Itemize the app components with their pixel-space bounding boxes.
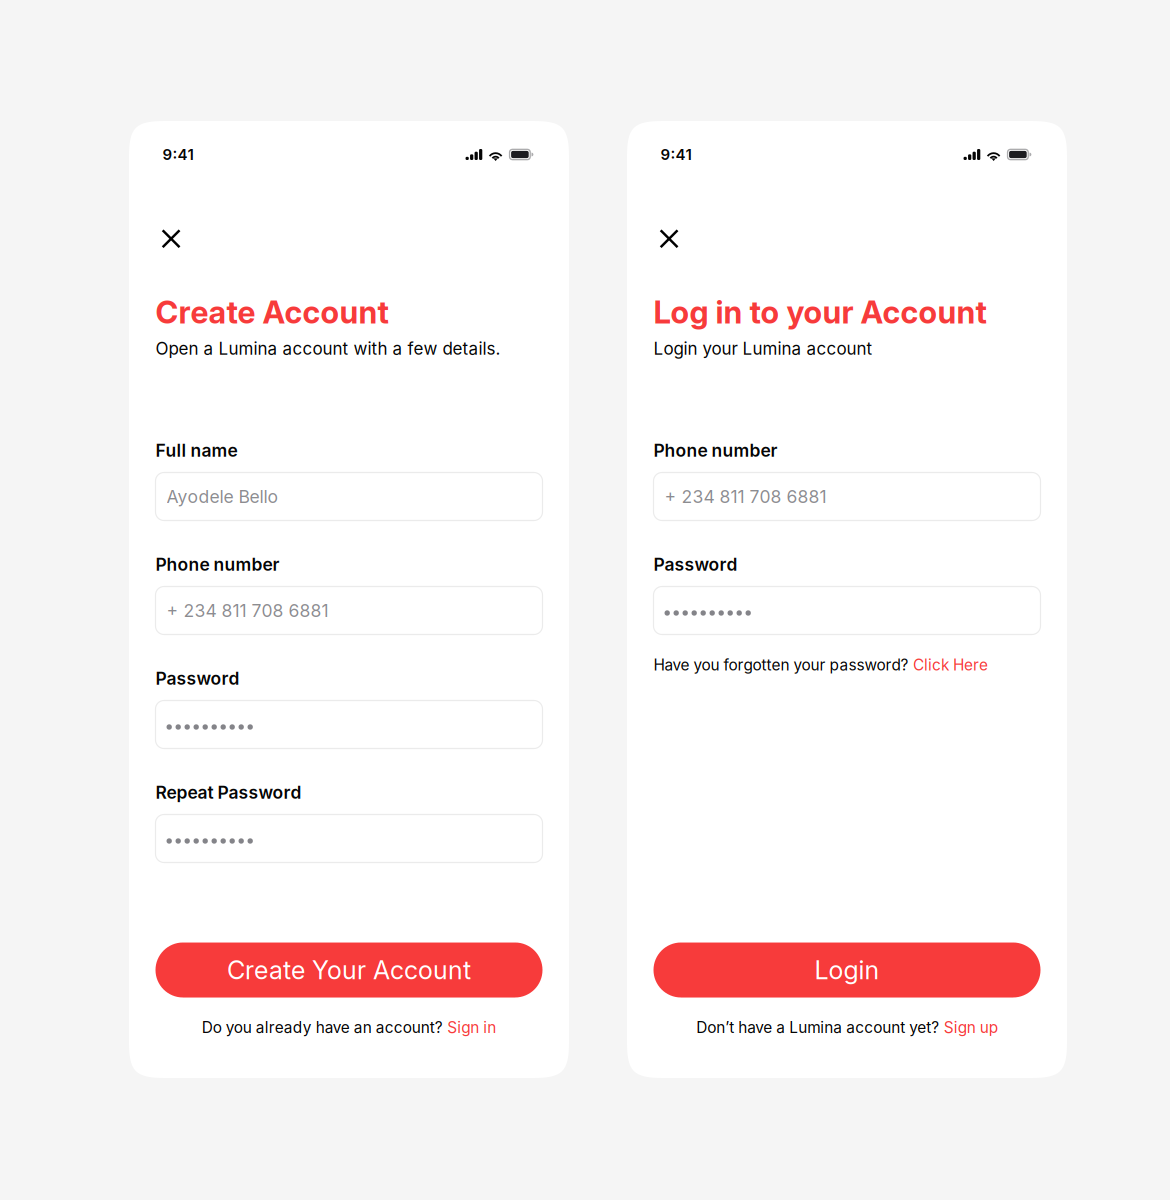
staticText: Sign in <box>447 1018 496 1037</box>
staticText: Phone number <box>653 440 777 461</box>
staticText: 9:41 <box>660 145 691 164</box>
button[interactable]: + 234 811 708 6881 <box>155 586 542 634</box>
button[interactable]: Close <box>155 229 186 248</box>
button[interactable]: Sign in <box>447 1018 496 1037</box>
staticText: Login your Lumina account <box>653 338 872 359</box>
button[interactable] <box>155 814 542 862</box>
button[interactable] <box>155 700 542 748</box>
staticText: Click Here <box>913 656 988 674</box>
button[interactable]: Create Your Account <box>155 942 542 997</box>
staticText: + 234 811 708 6881 <box>166 600 328 621</box>
staticText: Sign up <box>944 1018 998 1037</box>
staticText: Login <box>814 955 879 985</box>
button[interactable]: + 234 811 708 6881 <box>653 472 1040 520</box>
staticText: Open a Lumina account with a few details… <box>155 338 500 359</box>
button[interactable]: Login <box>653 942 1040 997</box>
staticText: Log in to your Account <box>653 293 986 331</box>
button[interactable]: Close <box>653 229 684 248</box>
staticText: Full name <box>155 440 237 461</box>
staticText: Have you forgotten your password? <box>653 656 908 674</box>
staticText: Password <box>155 668 239 689</box>
staticText: 9:41 <box>162 145 193 164</box>
staticText: + 234 811 708 6881 <box>664 486 826 507</box>
staticText: Do you already have an account? <box>202 1018 443 1037</box>
staticText: Create Your Account <box>227 955 471 985</box>
staticText: Phone number <box>155 554 279 575</box>
button[interactable]: Ayodele Bello <box>155 472 542 520</box>
staticText: Ayodele Bello <box>166 486 278 507</box>
button[interactable]: Click Here <box>913 656 988 674</box>
button[interactable] <box>653 586 1040 634</box>
staticText: Create Account <box>155 293 388 331</box>
staticText: Password <box>653 554 737 575</box>
staticText: Repeat Password <box>155 782 301 803</box>
staticText: Don’t have a Lumina account yet? <box>696 1018 939 1037</box>
button[interactable]: Sign up <box>944 1018 998 1037</box>
